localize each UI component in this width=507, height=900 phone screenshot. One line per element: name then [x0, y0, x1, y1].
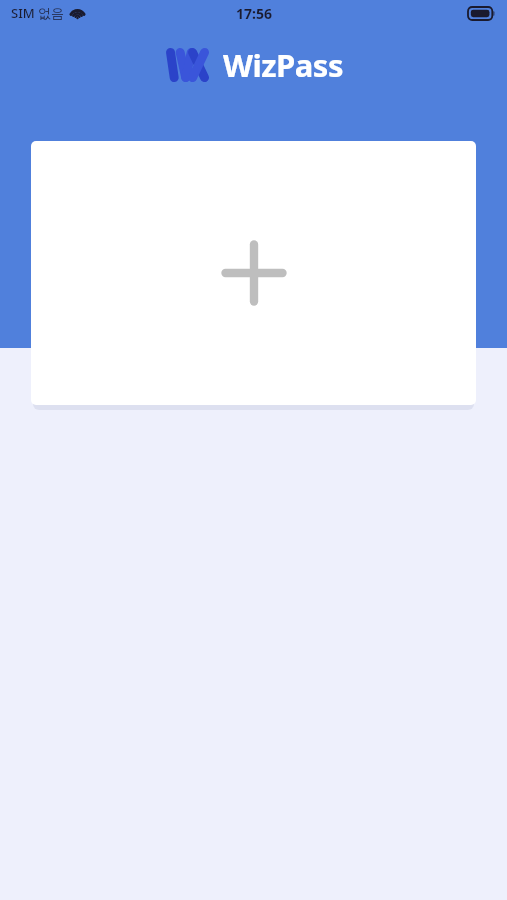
staticText: 17:56	[236, 4, 272, 23]
staticText: SIM 없음	[11, 4, 65, 22]
staticText: WizPass	[223, 44, 343, 86]
button[interactable]: Add new pass	[31, 141, 476, 405]
